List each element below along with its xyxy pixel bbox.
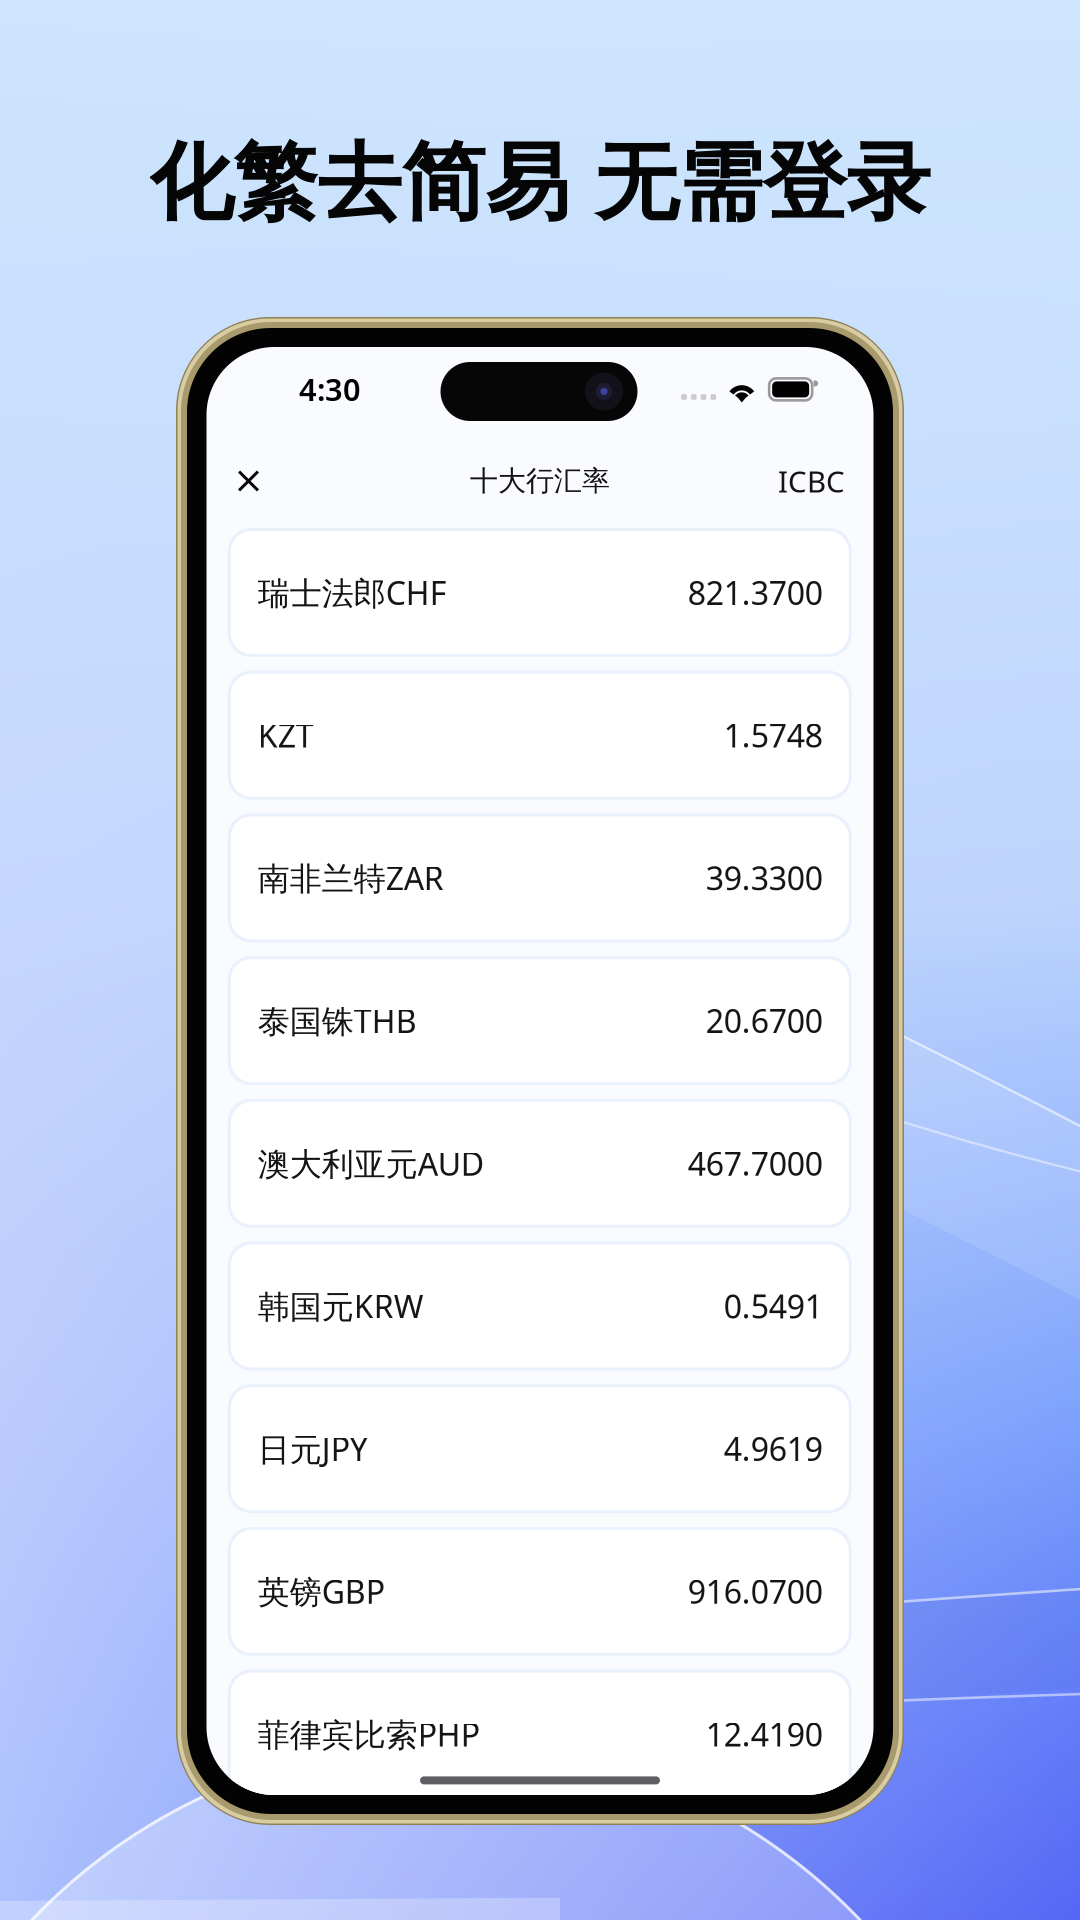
staticText: 瑞士法郎CHF xyxy=(258,571,447,614)
button[interactable]: 韩国元KRW xyxy=(231,1244,849,1367)
button[interactable]: 南非兰特ZAR xyxy=(231,816,849,939)
staticText: 十大行汇率 xyxy=(470,464,610,498)
staticText: 化繁去简易 无需登录 xyxy=(149,131,930,235)
staticText: 39.3300 xyxy=(706,857,823,899)
button[interactable]: 菲律宾比索PHP xyxy=(231,1673,849,1796)
staticText: 澳大利亚元AUD xyxy=(258,1142,484,1185)
staticText: 916.0700 xyxy=(688,1570,823,1613)
staticText: 泰国铢THB xyxy=(258,999,417,1042)
button[interactable]: 日元JPY xyxy=(231,1387,849,1510)
staticText: 日元JPY xyxy=(258,1427,368,1470)
staticText: 韩国元KRW xyxy=(258,1285,424,1327)
button[interactable]: 英镑GBP xyxy=(231,1530,849,1653)
staticText: 4:30 xyxy=(299,369,361,409)
staticText: 20.6700 xyxy=(706,999,823,1042)
staticText: ICBC xyxy=(778,461,845,500)
staticText: 4.9619 xyxy=(724,1427,823,1470)
staticText: 0.5491 xyxy=(724,1285,823,1327)
staticText: 821.3700 xyxy=(688,571,823,614)
button[interactable]: 瑞士法郎CHF xyxy=(231,531,849,654)
staticText: 467.7000 xyxy=(688,1142,823,1185)
button[interactable]: KZT xyxy=(231,674,849,797)
staticText: 菲律宾比索PHP xyxy=(258,1713,480,1755)
button[interactable]: 泰国铢THB xyxy=(231,959,849,1082)
button[interactable]: ICBC xyxy=(766,454,856,508)
button[interactable]: 澳大利亚元AUD xyxy=(231,1102,849,1225)
button[interactable]: Close xyxy=(221,454,275,508)
staticText: 1.5748 xyxy=(724,714,823,756)
staticText: 南非兰特ZAR xyxy=(258,857,444,899)
staticText: 12.4190 xyxy=(706,1713,823,1755)
staticText: KZT xyxy=(258,714,314,756)
staticText: 英镑GBP xyxy=(258,1570,385,1613)
